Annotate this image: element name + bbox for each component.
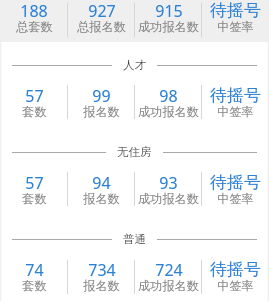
button[interactable]: 99 [68, 85, 135, 105]
staticText: 待摇号 [210, 85, 261, 105]
button[interactable]: 普通 [0, 230, 269, 248]
staticText: 总套数 [16, 19, 53, 34]
staticText: 915 [155, 0, 183, 20]
staticText: 成功报名数 [138, 104, 199, 119]
staticText: 927 [88, 0, 116, 20]
staticText: 中签率 [217, 278, 254, 293]
button[interactable]: 成功报名数 [135, 278, 202, 293]
staticText: 总报名数 [77, 19, 126, 34]
button[interactable]: 中签率 [202, 104, 269, 119]
button[interactable]: 57 [0, 85, 68, 105]
button[interactable]: 成功报名数 [135, 191, 202, 206]
button[interactable]: 套数 [0, 104, 68, 119]
button[interactable]: 成功报名数 [135, 104, 202, 119]
staticText: 734 [88, 259, 116, 279]
staticText: 套数 [22, 104, 47, 119]
staticText: 待摇号 [210, 172, 261, 192]
button[interactable]: 待摇号 [202, 172, 269, 192]
button[interactable]: 报名数 [68, 278, 135, 293]
button[interactable]: 报名数 [68, 104, 135, 119]
button[interactable]: 待摇号 [202, 0, 269, 20]
button[interactable]: 927 [68, 0, 135, 20]
button[interactable]: 915 [135, 0, 202, 20]
staticText: 成功报名数 [138, 278, 199, 293]
staticText: 成功报名数 [138, 191, 199, 206]
staticText: 套数 [22, 191, 47, 206]
staticText: 188 [20, 0, 48, 20]
button[interactable]: 中签率 [202, 19, 269, 34]
button[interactable]: 待摇号 [202, 85, 269, 105]
staticText: 报名数 [83, 191, 120, 206]
button[interactable]: 93 [135, 172, 202, 192]
staticText: 报名数 [83, 104, 120, 119]
button[interactable]: 98 [135, 85, 202, 105]
staticText: 93 [159, 172, 178, 192]
staticText: 724 [155, 259, 183, 279]
button[interactable]: 188 [0, 0, 68, 20]
button[interactable]: 成功报名数 [135, 19, 202, 34]
button[interactable]: 套数 [0, 191, 68, 206]
staticText: 待摇号 [210, 259, 261, 279]
button[interactable]: 94 [68, 172, 135, 192]
button[interactable]: 中签率 [202, 278, 269, 293]
staticText: 98 [159, 85, 178, 105]
staticText: 57 [25, 85, 44, 105]
button[interactable]: 总报名数 [68, 19, 135, 34]
button[interactable]: 总套数 [0, 19, 68, 34]
staticText: 普通 [123, 232, 146, 246]
staticText: 中签率 [217, 104, 254, 119]
staticText: 套数 [22, 278, 47, 293]
button[interactable]: 无住房 [0, 143, 269, 161]
staticText: 报名数 [83, 278, 120, 293]
staticText: 99 [92, 85, 111, 105]
button[interactable]: 人才 [0, 56, 269, 74]
button[interactable]: 中签率 [202, 191, 269, 206]
staticText: 无住房 [117, 145, 152, 159]
button[interactable]: 74 [0, 259, 68, 279]
staticText: 人才 [123, 58, 146, 72]
staticText: 74 [25, 259, 44, 279]
staticText: 中签率 [217, 191, 254, 206]
staticText: 中签率 [217, 19, 254, 34]
button[interactable]: 734 [68, 259, 135, 279]
staticText: 94 [92, 172, 111, 192]
staticText: 成功报名数 [138, 19, 199, 34]
button[interactable]: 724 [135, 259, 202, 279]
staticText: 57 [25, 172, 44, 192]
button[interactable]: 报名数 [68, 191, 135, 206]
button[interactable]: 57 [0, 172, 68, 192]
button[interactable]: 套数 [0, 278, 68, 293]
staticText: 待摇号 [210, 0, 261, 20]
button[interactable]: 待摇号 [202, 259, 269, 279]
